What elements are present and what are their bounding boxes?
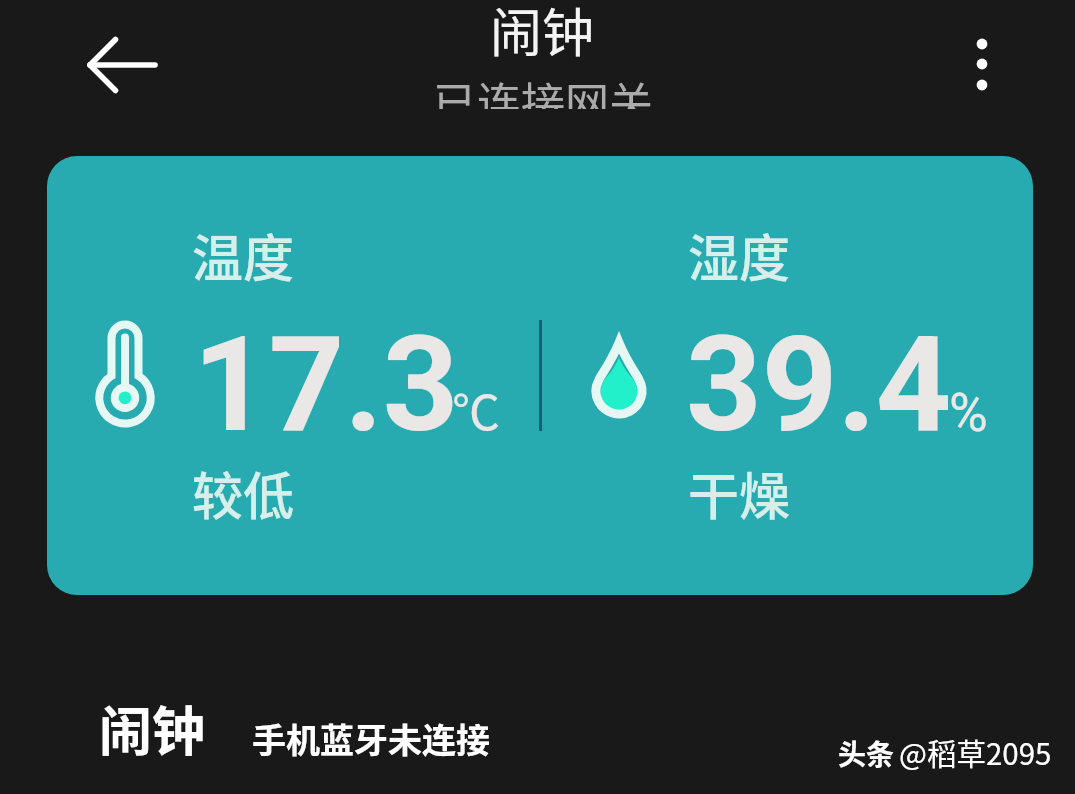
- staticText: 手机蓝牙未连接: [252, 714, 490, 763]
- staticText: 闹钟: [490, 0, 595, 67]
- staticText: @稻草2095: [899, 731, 1052, 774]
- staticText: 头条: [838, 733, 895, 774]
- button[interactable]: More options: [950, 18, 1014, 110]
- button[interactable]: Back: [68, 22, 162, 108]
- staticText: ℃: [452, 374, 501, 444]
- staticText: 较低: [192, 456, 295, 530]
- staticText: 湿度: [688, 218, 791, 292]
- staticText: 温度: [192, 218, 295, 292]
- staticText: 39.4: [686, 308, 952, 463]
- staticText: 17.3: [193, 308, 459, 463]
- button[interactable]: 温度: [47, 156, 539, 595]
- staticText: 干燥: [688, 456, 791, 530]
- staticText: %: [949, 382, 988, 444]
- button[interactable]: 湿度: [542, 156, 1033, 595]
- staticText: 闹钟: [99, 690, 205, 767]
- button[interactable]: 闹钟: [99, 690, 443, 767]
- staticText: 已连接网关: [433, 69, 653, 109]
